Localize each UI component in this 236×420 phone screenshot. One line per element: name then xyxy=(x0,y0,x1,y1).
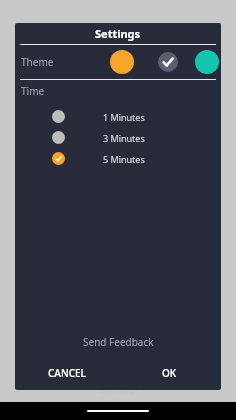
button[interactable]: Orange theme xyxy=(109,49,135,75)
button[interactable]: 5 Minutes xyxy=(15,148,221,169)
button[interactable]: 3 Minutes xyxy=(15,127,221,148)
staticText: Time xyxy=(21,84,45,98)
staticText: 3 Minutes xyxy=(103,132,145,144)
button[interactable]: 1 Minutes xyxy=(15,106,221,127)
button[interactable]: OK xyxy=(118,360,221,386)
staticText: OK xyxy=(162,366,177,380)
staticText: 5 Minutes xyxy=(103,153,145,165)
button[interactable]: Dark theme, selected xyxy=(156,50,180,74)
button[interactable]: CANCEL xyxy=(15,360,118,386)
staticText: 1 Minutes xyxy=(103,111,145,123)
staticText: Settings xyxy=(95,26,141,41)
staticText: Theme xyxy=(21,55,54,69)
button[interactable]: Teal theme xyxy=(194,49,220,75)
staticText: CANCEL xyxy=(48,366,86,380)
staticText: Send Feedback xyxy=(83,335,154,349)
button[interactable]: Send Feedback xyxy=(15,330,221,354)
staticText: design mode 0.1 xyxy=(98,389,138,396)
